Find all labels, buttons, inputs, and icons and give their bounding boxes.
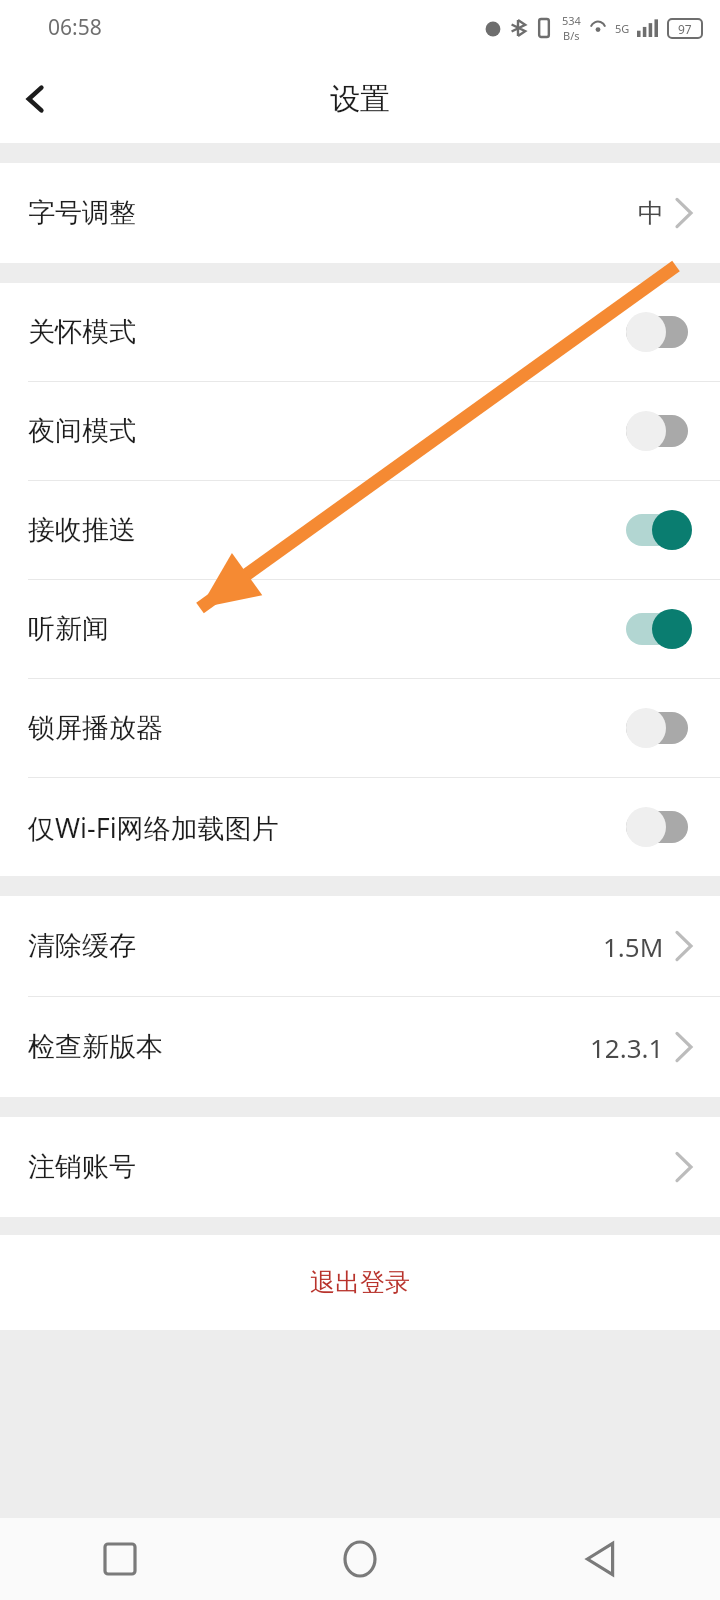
button[interactable]: 检查新版本	[0, 997, 720, 1097]
staticText: 注销账号	[28, 1150, 136, 1184]
staticText: 字号调整	[28, 196, 136, 230]
button[interactable]: 锁屏播放器	[0, 679, 720, 777]
button[interactable]: 清除缓存	[0, 896, 720, 996]
button[interactable]: 接收推送	[0, 481, 720, 579]
staticText: 听新闻	[28, 612, 109, 646]
staticText: B/s	[563, 28, 580, 43]
button[interactable]: 仅Wi-Fi网络加载图片	[0, 778, 720, 876]
staticText: 12.3.1	[590, 1030, 664, 1065]
button[interactable]: 退出登录	[0, 1235, 720, 1330]
staticText: 5G	[615, 21, 630, 36]
button[interactable]: 注销账号	[0, 1117, 720, 1217]
staticText: 夜间模式	[28, 414, 136, 448]
button[interactable]: Back	[0, 63, 72, 135]
staticText: 关怀模式	[28, 315, 136, 349]
button[interactable]: Recents	[0, 1518, 240, 1600]
staticText: 锁屏播放器	[28, 711, 163, 745]
staticText: 中	[638, 197, 664, 230]
button[interactable]: 字号调整	[0, 163, 720, 263]
button[interactable]: 关怀模式	[0, 283, 720, 381]
button[interactable]: 听新闻	[0, 580, 720, 678]
staticText: 接收推送	[28, 513, 136, 547]
button[interactable]: 夜间模式	[0, 382, 720, 480]
staticText: 1.5M	[603, 929, 664, 964]
staticText: 534	[562, 13, 581, 28]
staticText: 仅Wi-Fi网络加载图片	[28, 809, 279, 846]
staticText: 退出登录	[310, 1267, 410, 1298]
staticText: 清除缓存	[28, 929, 136, 963]
button[interactable]: Back	[480, 1518, 720, 1600]
staticText: 设置	[330, 80, 390, 118]
staticText: 97	[678, 21, 692, 37]
staticText: 06:58	[48, 13, 102, 42]
button[interactable]: Home	[240, 1518, 480, 1600]
staticText: 检查新版本	[28, 1030, 163, 1064]
